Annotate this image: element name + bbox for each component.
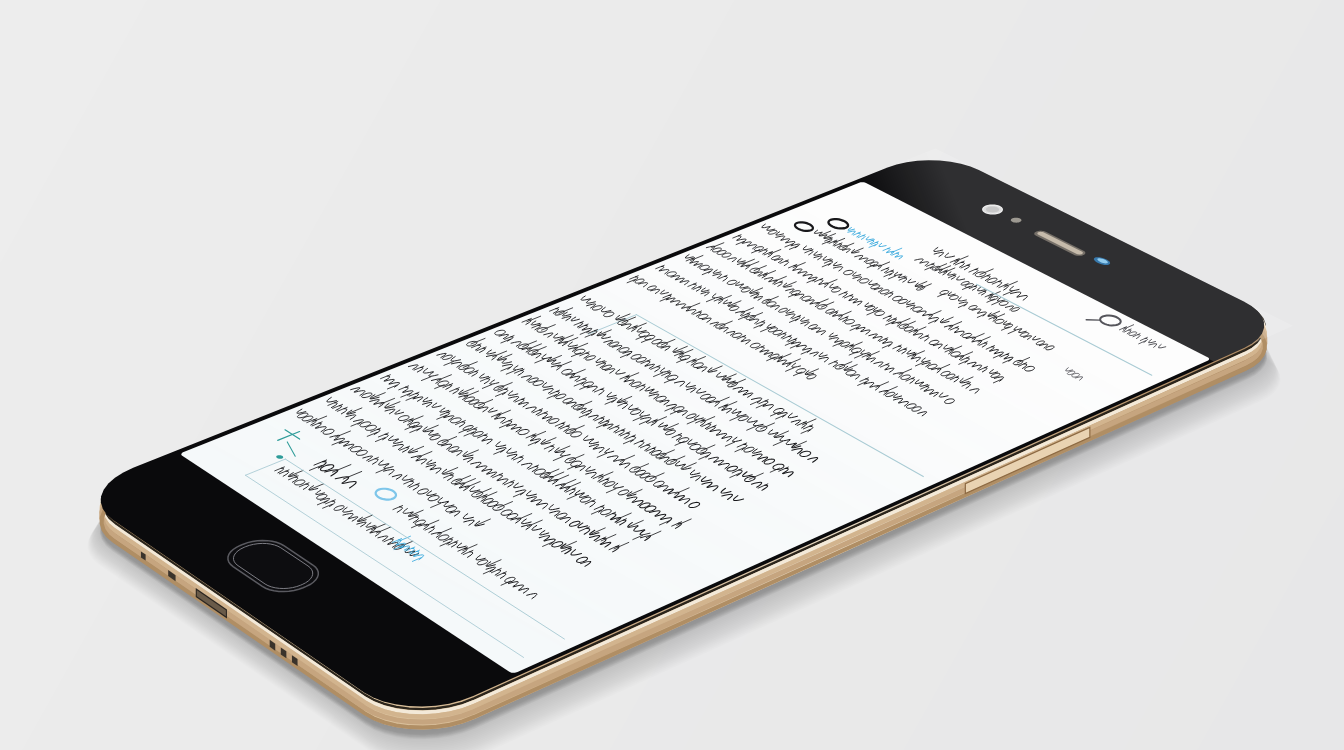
other: Smartphone displaying a document page	[0, 0, 1344, 750]
button[interactable]: Smartphone displaying a document page	[0, 0, 1344, 750]
